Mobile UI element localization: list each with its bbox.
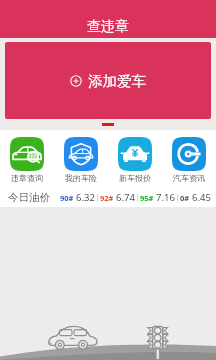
- staticText: 添加爱车: [88, 72, 146, 90]
- staticText: 新车报价: [119, 173, 151, 183]
- staticText: 查违章: [87, 18, 129, 36]
- button[interactable]: 违章查询: [0, 137, 54, 183]
- staticText: 汽车资讯: [173, 173, 205, 183]
- staticText: 今日油价: [8, 191, 50, 204]
- button[interactable]: 今日油价: [0, 187, 216, 207]
- staticText: 6.45: [192, 191, 211, 204]
- button[interactable]: 添加爱车: [5, 42, 211, 119]
- staticText: 95#: [140, 193, 154, 203]
- staticText: 我的车险: [65, 173, 97, 183]
- staticText: 7.16: [156, 191, 175, 204]
- button[interactable]: 新车报价: [108, 137, 162, 183]
- staticText: 0#: [180, 193, 190, 203]
- button[interactable]: 汽车资讯: [162, 137, 216, 183]
- staticText: 6.32: [76, 191, 95, 204]
- staticText: 92#: [100, 193, 114, 203]
- staticText: 违章查询: [11, 173, 43, 183]
- staticText: 90#: [60, 193, 74, 203]
- button[interactable]: 我的车险: [54, 137, 108, 183]
- staticText: 6.74: [116, 191, 135, 204]
